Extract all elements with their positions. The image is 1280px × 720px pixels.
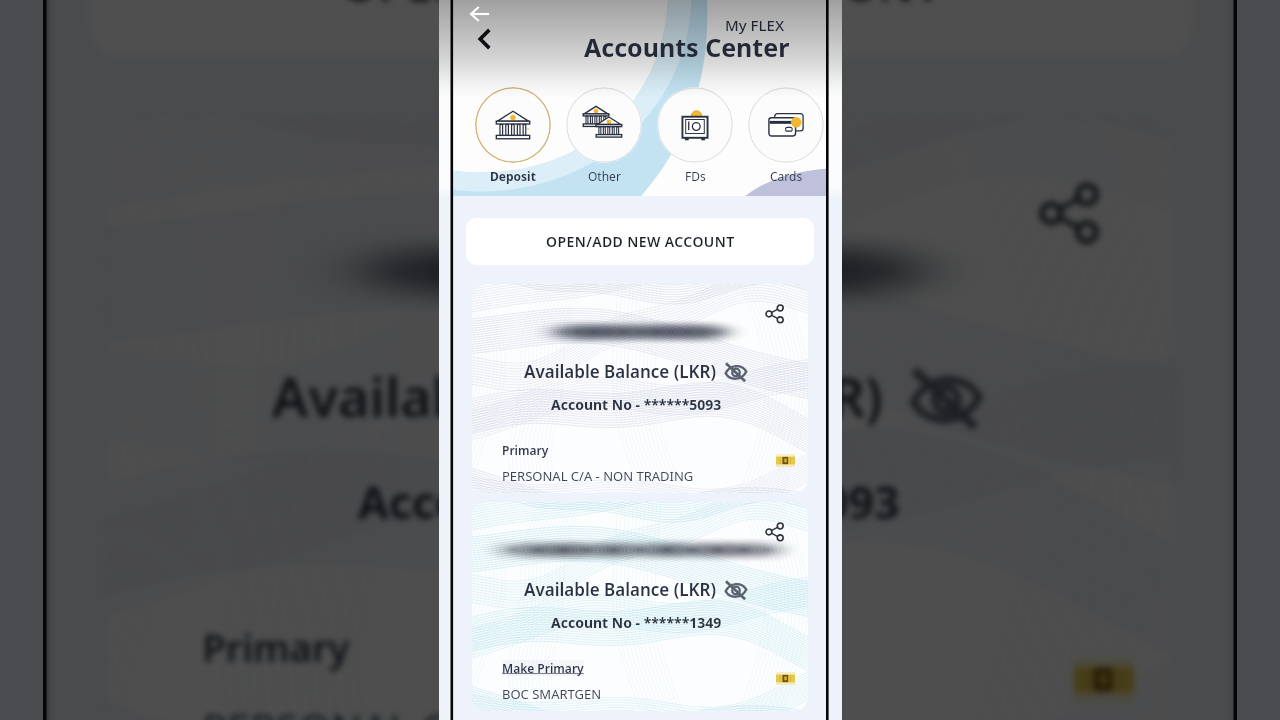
staticText: Available Balance (LKR) [524, 360, 716, 383]
staticText: Available Balance (LKR) [524, 578, 716, 601]
button[interactable]: FDs [657, 87, 733, 184]
button[interactable]: Share [1038, 182, 1099, 242]
button[interactable]: OPEN/ADD NEW ACCOUNT [88, 0, 1194, 58]
button[interactable]: Other [566, 87, 642, 184]
button[interactable]: Navigate back [473, 27, 497, 51]
staticText: Available Balance (LKR) [272, 360, 883, 433]
button[interactable]: Share [472, 502, 808, 711]
button[interactable]: Share [107, 118, 1175, 720]
button[interactable]: Share [472, 284, 808, 493]
staticText: Accounts Center [584, 30, 790, 64]
button[interactable]: Deposit [475, 87, 551, 184]
staticText: Deposit [490, 168, 536, 184]
button[interactable]: Cards [748, 87, 824, 184]
staticText: PERSONAL C/A - NON TRADING [202, 700, 813, 720]
staticText: BOC SMARTGEN [502, 685, 602, 703]
button[interactable]: Share [765, 522, 784, 541]
button[interactable]: Back [468, 2, 492, 26]
staticText: OPEN/ADD NEW ACCOUNT [342, 0, 943, 13]
staticText: PERSONAL C/A - NON TRADING [502, 467, 694, 485]
button[interactable]: Make Primary [502, 660, 584, 676]
button[interactable]: Share [765, 304, 784, 323]
staticText: My FLEX [725, 15, 785, 35]
staticText: OPEN/ADD NEW ACCOUNT [546, 232, 735, 251]
button[interactable]: Show balance [908, 363, 984, 433]
button[interactable]: Show balance [724, 361, 748, 383]
staticText: Account No - ******5093 [551, 395, 722, 414]
button[interactable]: Primary [202, 621, 352, 672]
button[interactable]: OPEN/ADD NEW ACCOUNT [466, 218, 814, 265]
staticText: Cards [770, 168, 803, 184]
staticText: Other [588, 168, 621, 184]
staticText: Account No - ******5093 [358, 471, 902, 532]
staticText: FDs [685, 168, 706, 184]
staticText: Account No - ******1349 [551, 613, 722, 632]
button[interactable]: Primary [502, 442, 549, 458]
button[interactable]: Show balance [724, 579, 748, 601]
